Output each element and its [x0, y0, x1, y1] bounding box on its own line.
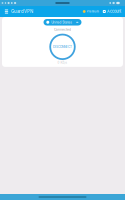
staticText: Account — [107, 9, 121, 14]
button[interactable]: Premium — [83, 6, 99, 17]
staticText: United States — [51, 20, 72, 24]
button[interactable]: Menu — [3, 6, 10, 17]
staticText: 0 KB/s — [57, 61, 67, 64]
staticText: DISCONNECT — [53, 45, 72, 49]
staticText: Premium — [87, 10, 99, 13]
staticText: Connected — [54, 27, 71, 31]
button[interactable]: United States — [43, 19, 81, 25]
button[interactable]: DISCONNECT — [50, 34, 75, 59]
button[interactable]: Account — [103, 6, 121, 17]
staticText: GuardVPN — [11, 9, 33, 14]
